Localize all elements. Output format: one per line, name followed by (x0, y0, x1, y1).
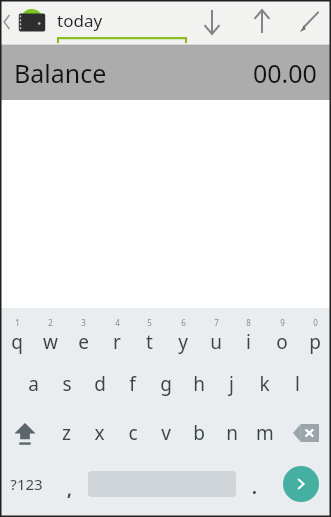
button[interactable]: ?123 (0, 458, 53, 510)
button[interactable]: Back (0, 0, 14, 44)
staticText: q (11, 329, 23, 355)
button[interactable]: Expense (237, 0, 287, 44)
staticText: v (161, 420, 171, 446)
staticText: 1 (15, 317, 20, 328)
button[interactable]: l (281, 359, 314, 408)
staticText: s (62, 371, 72, 397)
button[interactable]: today (57, 3, 187, 42)
button[interactable]: a (17, 359, 50, 408)
staticText: k (259, 371, 270, 397)
button[interactable]: Shift (0, 408, 50, 458)
staticText: z (62, 420, 71, 446)
staticText: 6 (181, 317, 186, 328)
staticText: 9 (280, 317, 285, 328)
button[interactable]: b (182, 408, 215, 458)
button[interactable]: 9 (265, 312, 298, 359)
staticText: g (160, 371, 172, 397)
staticText: i (246, 329, 251, 355)
staticText: ?123 (10, 474, 43, 494)
button[interactable]: s (50, 359, 83, 408)
staticText: 4 (115, 317, 120, 328)
button[interactable]: c (116, 408, 149, 458)
staticText: . (252, 476, 257, 499)
button[interactable]: 0 (298, 312, 331, 359)
staticText: o (276, 329, 288, 355)
button[interactable]: 3 (67, 312, 100, 359)
staticText: Balance (14, 56, 107, 90)
button[interactable]: j (215, 359, 248, 408)
staticText: a (28, 371, 39, 397)
staticText: b (193, 420, 205, 446)
button[interactable]: h (182, 359, 215, 408)
staticText: f (129, 371, 136, 397)
button[interactable]: x (83, 408, 116, 458)
button[interactable]: 4 (100, 312, 133, 359)
button[interactable]: 7 (199, 312, 232, 359)
staticText: 8 (246, 317, 251, 328)
staticText: j (229, 371, 234, 397)
button[interactable]: , (53, 458, 86, 510)
button[interactable]: d (83, 359, 116, 408)
button[interactable]: 8 (232, 312, 265, 359)
button[interactable]: Backspace (281, 408, 331, 458)
button[interactable]: Enter (283, 466, 319, 502)
button[interactable]: 6 (166, 312, 199, 359)
staticText: h (193, 371, 205, 397)
staticText: u (210, 329, 222, 355)
button[interactable]: 5 (133, 312, 166, 359)
button[interactable]: n (215, 408, 248, 458)
button[interactable]: m (248, 408, 281, 458)
button[interactable]: g (149, 359, 182, 408)
staticText: e (78, 329, 89, 355)
staticText: 00.00 (253, 56, 317, 90)
staticText: l (295, 371, 300, 397)
staticText: y (178, 329, 188, 355)
staticText: x (94, 420, 105, 446)
button[interactable]: k (248, 359, 281, 408)
staticText: t (146, 329, 153, 355)
staticText: 7 (214, 317, 219, 328)
button[interactable]: Edit (287, 0, 331, 44)
staticText: 3 (81, 317, 86, 328)
button[interactable]: z (50, 408, 83, 458)
staticText: c (128, 420, 138, 446)
button[interactable]: Balance (0, 45, 331, 100)
staticText: n (226, 420, 238, 446)
staticText: p (309, 329, 321, 355)
staticText: 2 (48, 317, 53, 328)
staticText: w (43, 329, 58, 355)
staticText: d (94, 371, 106, 397)
staticText: r (113, 329, 121, 355)
staticText: today (57, 9, 103, 32)
staticText: , (67, 478, 72, 501)
button[interactable]: . (238, 458, 271, 510)
button[interactable]: f (116, 359, 149, 408)
button[interactable]: v (149, 408, 182, 458)
staticText: 5 (147, 317, 152, 328)
button[interactable]: App icon (15, 5, 49, 39)
button[interactable]: 1 (0, 312, 34, 359)
button[interactable]: 2 (34, 312, 67, 359)
staticText: 0 (313, 317, 318, 328)
staticText: m (256, 420, 274, 446)
button[interactable]: Income (187, 0, 237, 44)
